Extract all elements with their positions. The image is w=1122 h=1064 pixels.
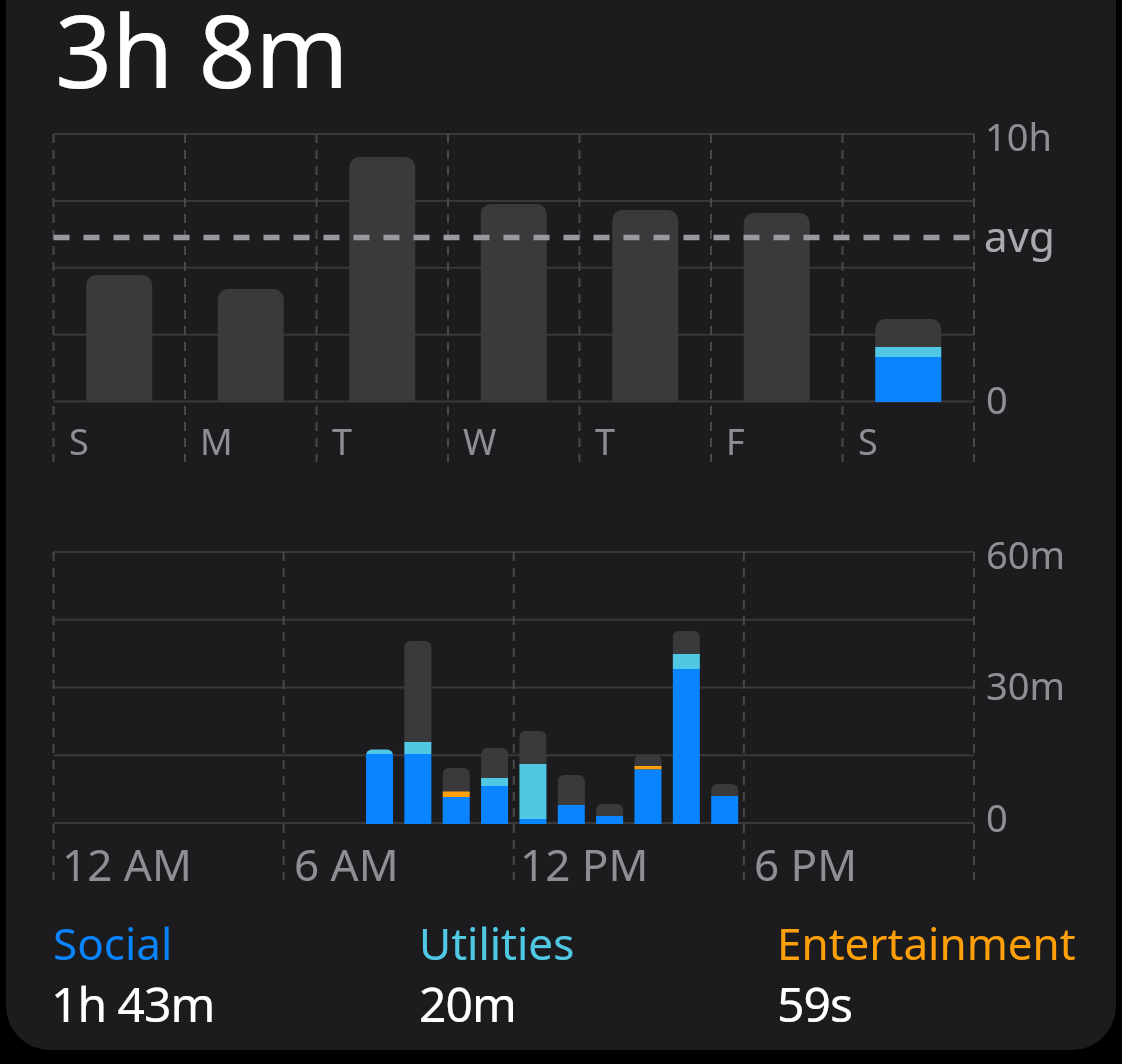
staticText: 60m [986, 528, 1066, 580]
staticText: 59s [777, 971, 852, 1036]
staticText: 0 [986, 373, 1008, 425]
staticText: 20m [419, 971, 516, 1036]
staticText: 6 PM [754, 834, 858, 894]
staticText: 6 AM [294, 834, 399, 894]
staticText: 12 PM [520, 834, 649, 894]
staticText: 10h [985, 110, 1052, 162]
staticText: avg [984, 207, 1055, 264]
staticText: S [69, 417, 89, 466]
staticText: 12 AM [62, 834, 192, 894]
staticText: T [332, 417, 353, 466]
staticText: M [200, 417, 233, 466]
staticText: 1h 43m [51, 971, 215, 1036]
staticText: 3h 8m [55, 0, 349, 117]
staticText: 30m [986, 659, 1066, 711]
staticText: F [726, 417, 745, 466]
staticText: T [595, 417, 616, 466]
button[interactable] [6, 0, 1116, 1050]
staticText: Utilities [419, 913, 575, 973]
staticText: 0 [986, 791, 1008, 843]
staticText: Entertainment [777, 913, 1076, 973]
staticText: S [858, 417, 878, 466]
staticText: W [463, 417, 497, 466]
staticText: Social [53, 913, 173, 973]
